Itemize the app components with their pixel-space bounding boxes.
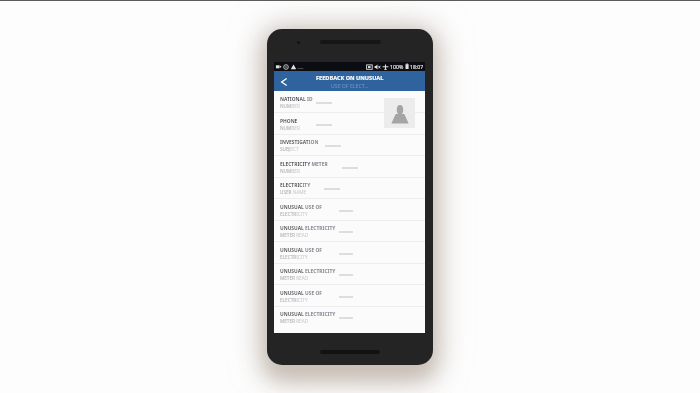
staticText: ELECTRICITY xyxy=(280,254,308,260)
button[interactable]: UNUSUAL ELECTRICITY xyxy=(274,220,425,242)
button[interactable]: UNUSUAL USE OF xyxy=(274,199,425,221)
staticText: UNUSUAL USE OF xyxy=(280,204,323,211)
button[interactable]: UNUSUAL USE OF xyxy=(274,285,425,307)
staticText: NUMBER xyxy=(280,168,300,174)
staticText: SUBJECT xyxy=(280,146,299,152)
staticText: ELECTRICITY xyxy=(280,211,308,217)
staticText: INVESTIGATION xyxy=(280,139,319,146)
button[interactable]: UNUSUAL ELECTRICITY xyxy=(274,263,425,285)
button[interactable]: ELECTRICITY xyxy=(274,177,425,199)
staticText: NATIONAL ID xyxy=(280,96,313,103)
button[interactable]: INVESTIGATION xyxy=(274,134,425,156)
staticText: ELECTRICITY METER xyxy=(280,161,328,168)
button[interactable]: UNUSUAL ELECTRICITY xyxy=(274,306,425,328)
staticText: PHONE xyxy=(280,118,298,125)
staticText: UNUSUAL USE OF xyxy=(280,247,323,254)
staticText: 18:07 xyxy=(410,63,424,70)
button[interactable]: PHONE xyxy=(274,113,425,135)
button[interactable]: ELECTRICITY METER xyxy=(274,156,425,178)
button[interactable]: Back xyxy=(274,71,294,91)
button[interactable]: NATIONAL ID xyxy=(274,91,425,113)
staticText: METER READ xyxy=(280,318,309,324)
staticText: METER READ xyxy=(280,275,309,281)
staticText: UNUSUAL ELECTRICITY xyxy=(280,311,336,318)
staticText: METER READ xyxy=(280,232,309,238)
staticText: 100% xyxy=(390,63,404,70)
staticText: USER NAME xyxy=(280,189,307,195)
staticText: UNUSUAL ELECTRICITY xyxy=(280,225,336,232)
button[interactable]: UNUSUAL USE OF xyxy=(274,242,425,264)
staticText: USE OF ELECT... xyxy=(331,82,369,89)
staticText: UNUSUAL USE OF xyxy=(280,290,323,297)
staticText: FEEDBACK ON UNUSUAL xyxy=(316,74,384,82)
staticText: ELECTRICITY xyxy=(280,297,308,303)
staticText: NUMBER xyxy=(280,103,300,109)
button[interactable]: Subject photo xyxy=(384,98,415,128)
staticText: NUMBER xyxy=(280,125,300,131)
staticText: UNUSUAL ELECTRICITY xyxy=(280,268,336,275)
staticText: ELECTRICITY xyxy=(280,182,311,189)
